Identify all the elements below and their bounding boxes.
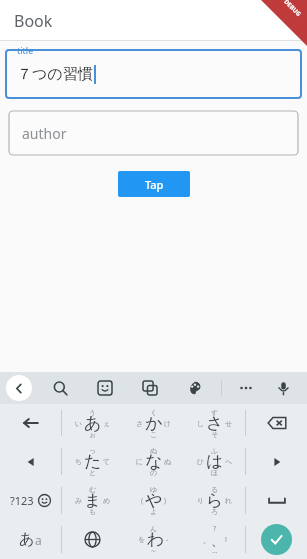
button[interactable]: Confirm <box>261 524 292 555</box>
staticText: title <box>17 44 34 56</box>
staticText: く <box>150 408 158 417</box>
button[interactable]: More options <box>234 376 258 400</box>
staticText: よ <box>150 507 158 516</box>
button[interactable]: く <box>123 404 184 442</box>
staticText: ま <box>84 490 102 511</box>
staticText: は <box>206 451 224 472</box>
staticText: せ <box>225 419 233 428</box>
staticText: う <box>89 408 97 417</box>
button[interactable]: Stickers <box>93 376 117 400</box>
button[interactable]: ?123 <box>0 481 61 520</box>
staticText: と <box>89 468 97 477</box>
staticText: わ <box>147 529 165 550</box>
staticText: 。 <box>203 536 210 545</box>
button[interactable]: Voice input <box>271 376 295 400</box>
staticText: ７つの習慣 <box>17 65 93 84</box>
button[interactable]: ぬ <box>123 442 184 481</box>
button[interactable]: ? <box>184 520 245 559</box>
button[interactable]: Delete <box>246 404 307 442</box>
staticText: ん <box>150 524 158 533</box>
staticText: こ <box>150 430 158 439</box>
staticText: ち <box>75 457 83 466</box>
staticText: み <box>75 496 83 505</box>
staticText: さ <box>136 419 144 428</box>
staticText: ほ <box>211 468 219 477</box>
button[interactable]: あ <box>0 520 61 559</box>
staticText: あ <box>84 413 102 434</box>
staticText: ら <box>206 490 224 511</box>
staticText: 、 <box>211 532 224 548</box>
staticText: ぇ <box>103 419 111 428</box>
staticText: ? <box>213 524 217 534</box>
staticText: ぬ <box>150 446 158 455</box>
staticText: Book <box>14 10 53 32</box>
staticText: る <box>211 485 219 494</box>
button[interactable]: Cursor right <box>246 442 307 481</box>
button[interactable]: Search <box>48 376 72 400</box>
staticText: な <box>145 451 163 472</box>
staticText: ぉ <box>89 430 97 439</box>
button[interactable]: Translate <box>138 376 162 400</box>
button[interactable]: ふ <box>184 442 245 481</box>
staticText: へ <box>225 457 233 466</box>
staticText: ふ <box>211 446 219 455</box>
button[interactable]: Change keyboard <box>62 520 123 559</box>
staticText: ?123 <box>10 493 34 508</box>
button[interactable]: ゆ <box>123 481 184 520</box>
button[interactable]: Space <box>246 481 307 520</box>
button[interactable]: る <box>184 481 245 520</box>
staticText: れ <box>225 496 233 505</box>
staticText: … <box>212 546 218 556</box>
staticText: a <box>35 532 42 548</box>
staticText: あ <box>19 530 35 549</box>
staticText: ( <box>141 496 144 506</box>
button[interactable]: ん <box>123 520 184 559</box>
staticText: ) <box>164 496 167 506</box>
staticText: っ <box>89 446 97 455</box>
staticText: た <box>84 451 102 472</box>
staticText: も <box>89 507 97 516</box>
staticText: - <box>166 535 169 545</box>
staticText: や <box>145 490 163 511</box>
staticText: DEBUG <box>282 0 303 18</box>
staticText: ろ <box>211 507 219 516</box>
button[interactable]: Undo <box>0 404 61 442</box>
button[interactable]: す <box>184 404 245 442</box>
staticText: ! <box>225 535 227 545</box>
staticText: か <box>145 413 163 434</box>
staticText: て <box>103 457 111 466</box>
staticText: ぬ <box>164 457 172 466</box>
staticText: の <box>150 468 158 477</box>
staticText: を <box>138 535 146 544</box>
staticText: ひ <box>197 457 205 466</box>
button[interactable]: Back <box>6 375 32 401</box>
staticText: い <box>75 419 83 428</box>
staticText: ゆ <box>150 485 158 494</box>
staticText: め <box>103 496 111 505</box>
staticText: に <box>136 457 144 466</box>
staticText: す <box>211 408 219 417</box>
staticText: そ <box>211 430 219 439</box>
staticText: り <box>197 496 205 505</box>
button[interactable]: う <box>62 404 123 442</box>
button[interactable]: む <box>62 481 123 520</box>
button[interactable]: っ <box>62 442 123 481</box>
staticText: け <box>164 419 172 428</box>
staticText: し <box>197 419 205 428</box>
button[interactable]: Cursor left <box>0 442 61 481</box>
button[interactable]: Tap <box>118 171 190 197</box>
staticText: さ <box>206 413 224 434</box>
button[interactable] <box>9 111 298 155</box>
staticText: む <box>89 485 97 494</box>
staticText: ～ <box>150 546 157 555</box>
staticText: Tap <box>145 177 164 192</box>
staticText: author <box>22 124 67 143</box>
button[interactable]: Themes <box>183 376 207 400</box>
button[interactable] <box>5 49 302 99</box>
